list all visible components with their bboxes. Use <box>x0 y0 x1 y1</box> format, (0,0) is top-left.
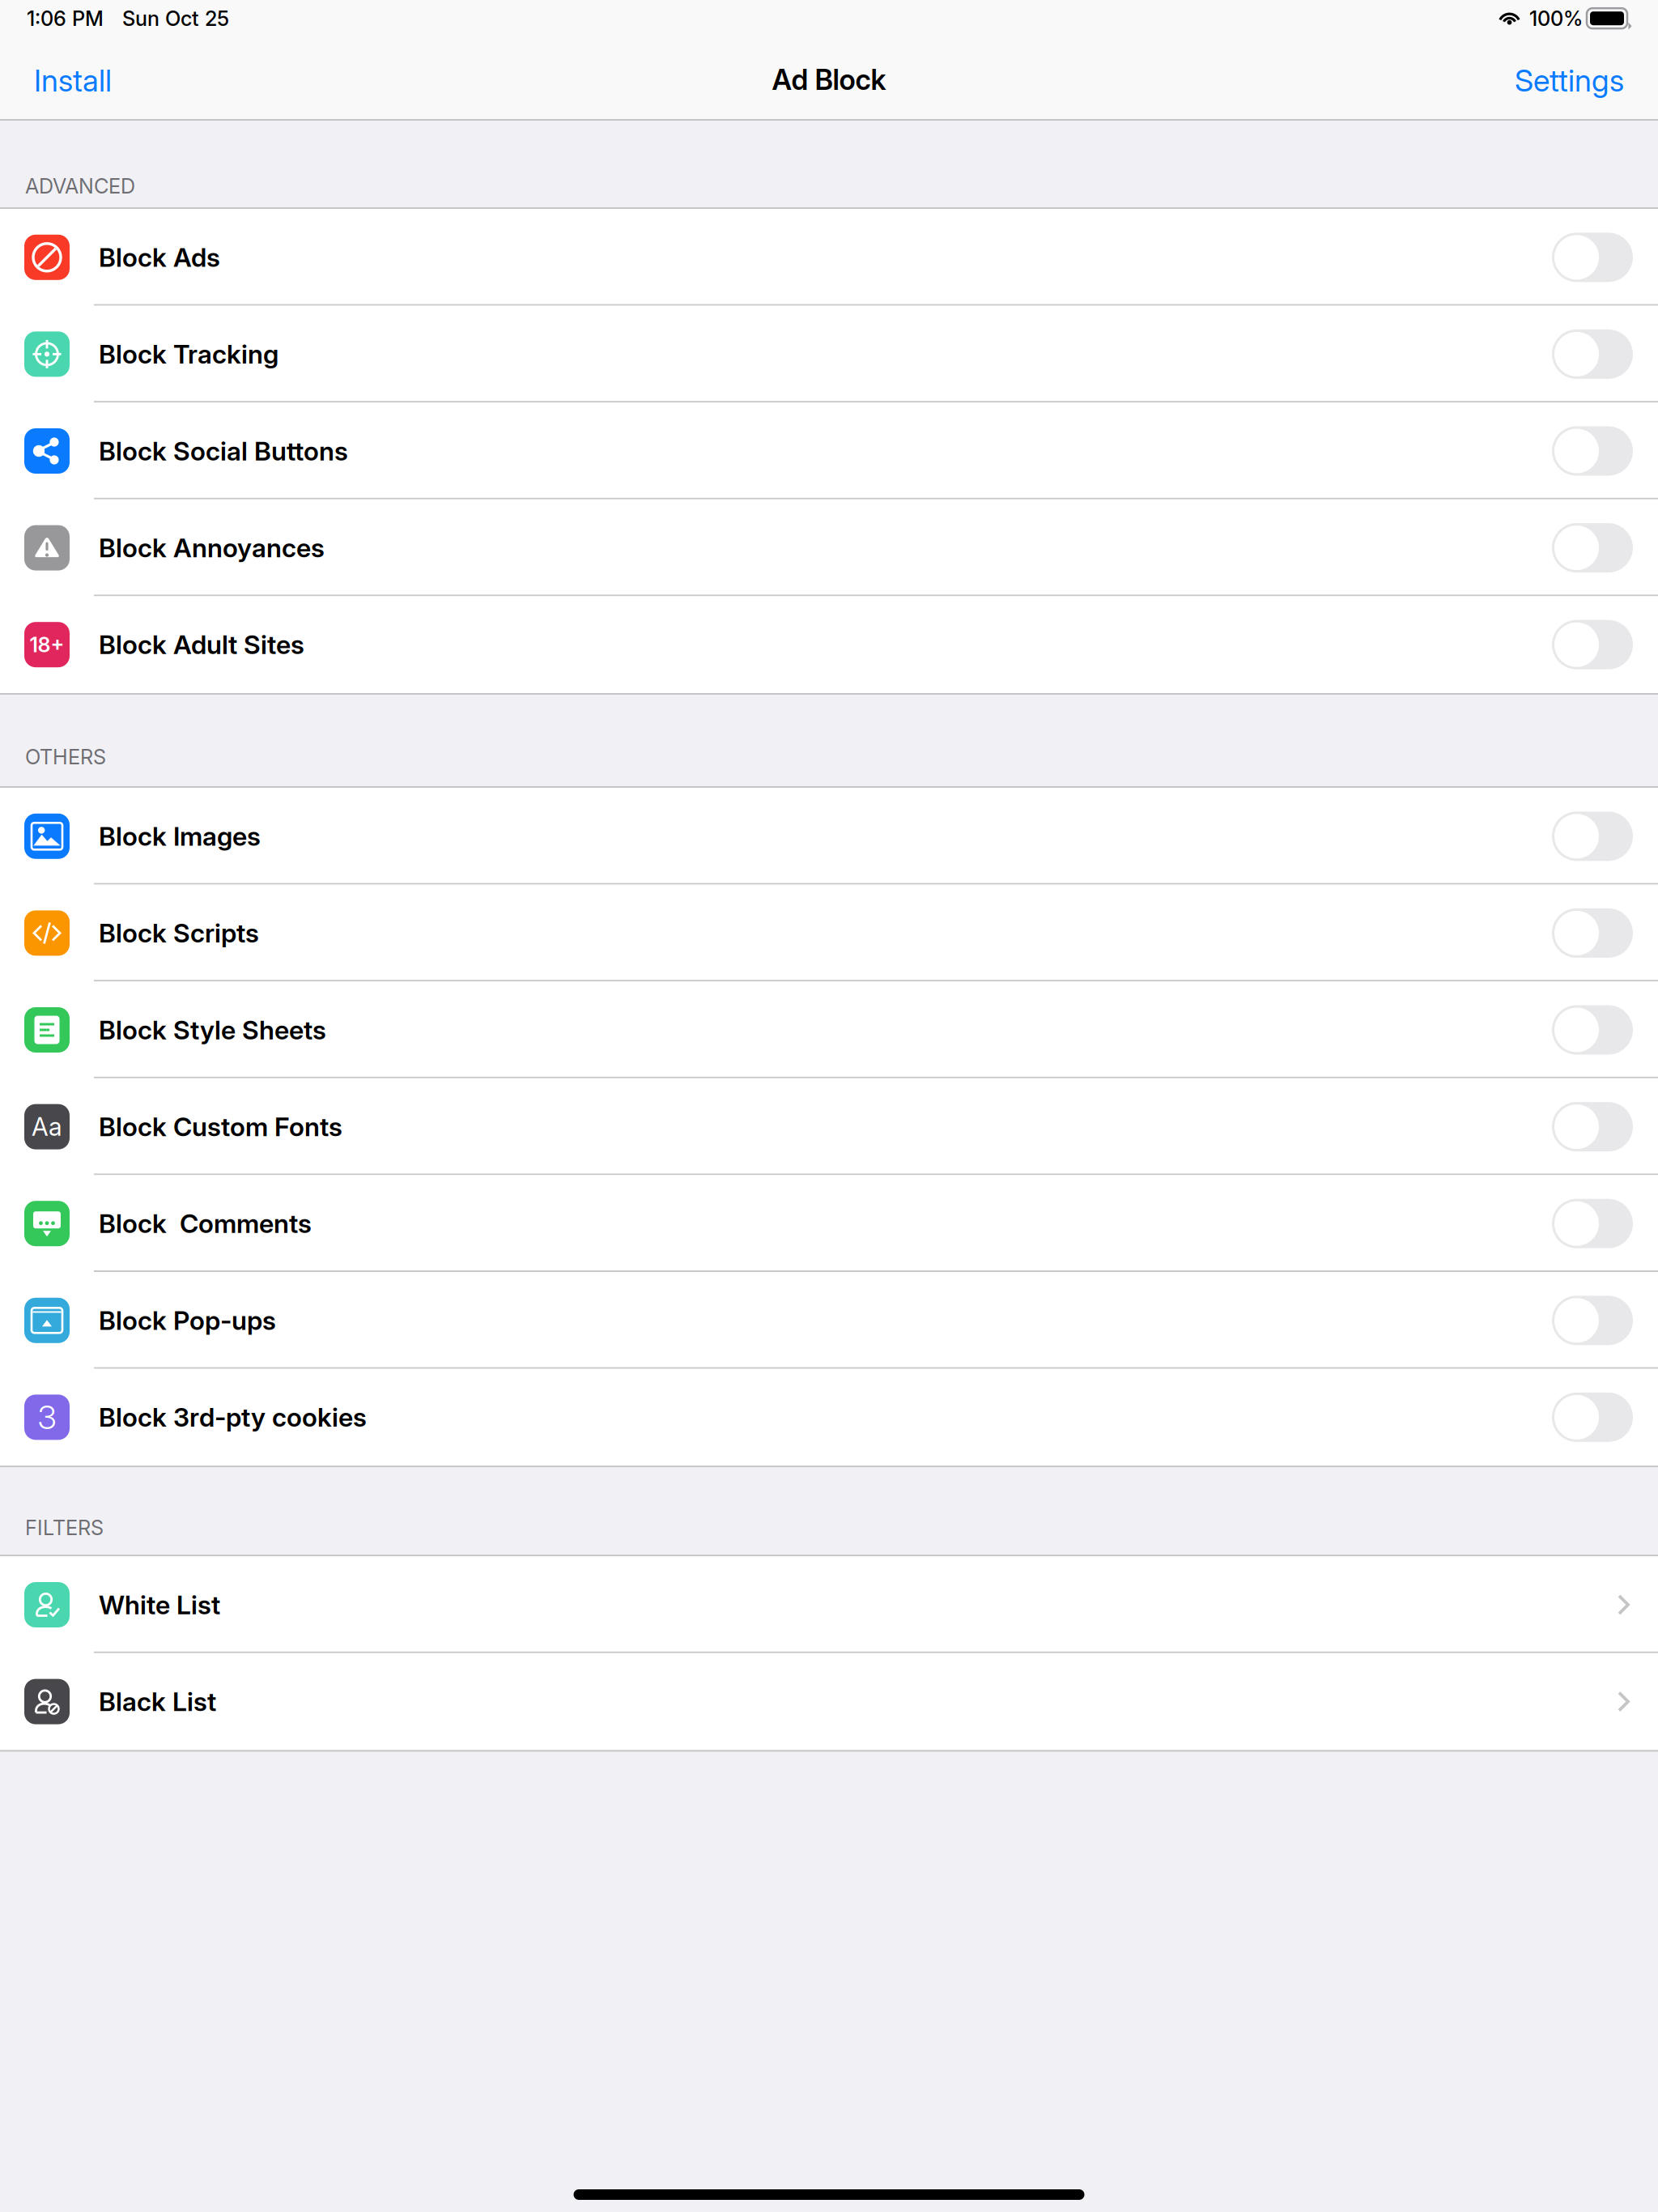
button[interactable]: Block Ads <box>0 209 1658 306</box>
button[interactable]: Block Comments <box>0 1175 1658 1272</box>
staticText: 3 <box>38 1398 56 1437</box>
staticText: Block Scripts <box>99 917 259 949</box>
button[interactable]: Block Social Buttons <box>0 403 1658 499</box>
staticText: Aa <box>32 1112 62 1142</box>
staticText: Block Tracking <box>99 338 278 370</box>
button[interactable]: Block Style Sheets <box>0 981 1658 1078</box>
button[interactable]: Block Tracking <box>0 306 1658 403</box>
button[interactable]: Block Annoyances <box>0 499 1658 596</box>
button[interactable]: Black List <box>0 1653 1658 1750</box>
staticText: Block Custom Fonts <box>99 1111 342 1142</box>
staticText: FILTERS <box>25 1515 104 1540</box>
staticText: Block Style Sheets <box>99 1014 326 1046</box>
staticText: White List <box>99 1589 220 1620</box>
button[interactable]: Install <box>34 62 112 104</box>
staticText: Ad Block <box>772 63 886 97</box>
button[interactable]: Block Pop-ups <box>0 1272 1658 1369</box>
button[interactable]: Settings <box>1515 62 1624 104</box>
button[interactable]: Block Adult Sites <box>0 596 1658 693</box>
staticText: Block Comments <box>99 1208 312 1239</box>
staticText: OTHERS <box>25 744 106 769</box>
staticText: Block Images <box>99 821 261 852</box>
staticText: 100% <box>1529 6 1583 31</box>
staticText: Block 3rd-pty cookies <box>99 1402 367 1433</box>
staticText: Block Pop-ups <box>99 1305 276 1336</box>
button[interactable]: Block Scripts <box>0 885 1658 981</box>
button[interactable]: Block Images <box>0 788 1658 885</box>
staticText: Block Social Buttons <box>99 435 348 467</box>
button[interactable]: Block Custom Fonts <box>0 1078 1658 1175</box>
staticText: Block Annoyances <box>99 532 325 563</box>
staticText: Sun Oct 25 <box>122 6 229 31</box>
staticText: 18+ <box>30 632 64 657</box>
staticText: 1:06 PM <box>27 6 104 31</box>
staticText: ADVANCED <box>25 174 135 198</box>
button[interactable]: Block 3rd-pty cookies <box>0 1369 1658 1466</box>
staticText: Install <box>34 62 112 99</box>
staticText: Block Adult Sites <box>99 629 304 660</box>
staticText: Settings <box>1515 62 1624 99</box>
staticText: Block Ads <box>99 242 220 273</box>
staticText: Black List <box>99 1686 216 1717</box>
button[interactable]: White List <box>0 1556 1658 1653</box>
